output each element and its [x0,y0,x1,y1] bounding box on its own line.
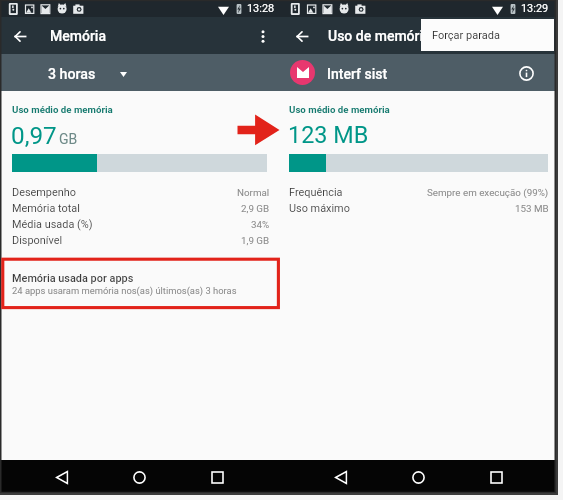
staticText: Forçar parada [432,29,500,42]
staticText: Média usada (%) [12,218,93,231]
staticText: 13:29 [521,2,549,15]
staticText: 24 apps usaram memória nos(as) últimos(a… [12,285,237,296]
staticText: Sempre em execução (99%) [427,187,549,198]
button[interactable]: Recent apps [202,462,232,492]
staticText: 123 MB [288,121,369,148]
staticText: Frequência [289,186,343,199]
staticText: Normal [237,187,270,198]
button[interactable]: Forçar parada [421,19,554,51]
staticText: Interf sist [327,66,388,82]
staticText: 0,97 [11,121,57,149]
button[interactable]: Recent apps [481,462,511,492]
staticText: 153 MB [515,203,549,214]
staticText: Uso médio de memória [289,104,390,115]
staticText: 2,9 GB [241,203,270,214]
staticText: Memória usada por apps [12,272,134,285]
staticText: Disponível [12,234,63,247]
staticText: Uso médio de memória [12,104,113,115]
staticText: 13:28 [247,2,275,15]
staticText: GB [59,131,78,147]
button[interactable]: More options [252,25,274,47]
button[interactable]: Navigate up [6,22,34,50]
button[interactable]: 3 horas [48,54,127,91]
button[interactable]: Home [403,462,433,492]
staticText: Memória [50,28,107,44]
button[interactable]: Back [326,462,356,492]
button[interactable]: Back [47,462,77,492]
staticText: Uso máximo [289,202,350,215]
button[interactable]: App info [511,58,541,88]
button[interactable]: Navigate up [288,22,316,50]
staticText: Desempenho [12,186,76,199]
button[interactable]: Memória usada por apps [0,269,282,299]
staticText: 3 horas [48,66,96,83]
staticText: Uso de memória [328,28,431,44]
staticText: Memória total [12,202,80,215]
staticText: 1,9 GB [241,235,270,246]
button[interactable]: Home [124,462,154,492]
staticText: 34% [251,219,270,230]
